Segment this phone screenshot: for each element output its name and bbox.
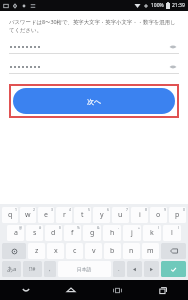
button[interactable]: o xyxy=(150,207,167,223)
staticText: b xyxy=(110,246,115,256)
button[interactable]: Home xyxy=(52,280,90,300)
button[interactable]: k xyxy=(143,225,161,241)
staticText: c xyxy=(73,246,77,256)
button[interactable]: i xyxy=(131,207,148,223)
staticText: e xyxy=(44,210,48,220)
staticText: i xyxy=(139,210,141,220)
staticText: t xyxy=(81,210,84,220)
staticText: w xyxy=(25,210,31,220)
staticText: ) xyxy=(178,225,180,230)
button[interactable]: Symbols xyxy=(23,261,42,277)
staticText: m xyxy=(147,246,154,256)
button[interactable]: Cursor left xyxy=(127,261,142,277)
staticText: 9 xyxy=(164,207,166,212)
staticText: r xyxy=(63,210,66,220)
button[interactable]: t xyxy=(74,207,91,223)
staticText: f xyxy=(71,228,74,238)
staticText: d xyxy=(51,228,56,238)
staticText: . xyxy=(118,265,120,273)
button[interactable]: Cursor right xyxy=(144,261,159,277)
staticText: 6 xyxy=(107,207,109,212)
staticText: l xyxy=(171,228,173,238)
button[interactable]: s xyxy=(26,225,43,241)
button[interactable]: n xyxy=(123,243,140,259)
staticText: ( xyxy=(158,225,160,230)
button[interactable]: h xyxy=(103,225,121,241)
staticText: k xyxy=(150,228,154,238)
button[interactable]: l xyxy=(163,225,181,241)
button[interactable]: c xyxy=(66,243,83,259)
button[interactable]: Backspace xyxy=(161,243,186,259)
staticText: 日本語 xyxy=(77,266,92,272)
button[interactable]: r xyxy=(56,207,72,223)
staticText: p xyxy=(175,210,180,220)
button[interactable]: w xyxy=(20,207,36,223)
staticText: , xyxy=(49,265,51,273)
staticText: # xyxy=(39,225,42,230)
staticText: 100% xyxy=(151,2,164,9)
button[interactable]: m xyxy=(142,243,159,259)
button[interactable]: f xyxy=(64,225,81,241)
button[interactable]: 日本語 xyxy=(58,261,111,277)
button[interactable]: 次へ xyxy=(13,88,175,114)
staticText: !?# xyxy=(29,266,36,273)
staticText: @ xyxy=(19,225,23,230)
staticText: $ xyxy=(59,225,61,230)
staticText: a xyxy=(14,228,18,238)
button[interactable]: j xyxy=(123,225,141,241)
staticText: 4 xyxy=(69,207,71,212)
button[interactable]: x xyxy=(47,243,64,259)
staticText: 3 xyxy=(51,207,53,212)
staticText: v xyxy=(92,246,96,256)
staticText: 8 xyxy=(145,207,147,212)
button[interactable]: Language xyxy=(2,261,21,277)
staticText: n xyxy=(129,246,134,256)
staticText: h xyxy=(110,228,115,238)
staticText: - xyxy=(118,225,120,230)
staticText: 2 xyxy=(33,207,35,212)
button[interactable]: u xyxy=(112,207,129,223)
staticText: 0 xyxy=(183,207,185,212)
button[interactable]: Back xyxy=(98,280,136,300)
button[interactable]: q xyxy=(2,207,18,223)
button[interactable]: a xyxy=(7,225,24,241)
button[interactable]: Comma xyxy=(44,261,56,277)
staticText: y xyxy=(100,210,104,220)
staticText: パスワードは8〜30桁で、英字大文字・英字小文字・・数字を混用してください。 xyxy=(9,18,179,34)
button[interactable]: Show password xyxy=(167,41,179,53)
staticText: j xyxy=(131,228,133,238)
staticText: q xyxy=(8,210,13,220)
button[interactable]: Enter xyxy=(161,261,186,277)
staticText: あa xyxy=(7,265,17,273)
staticText: o xyxy=(156,210,161,220)
button[interactable]: Show password xyxy=(167,61,179,73)
staticText: 7 xyxy=(126,207,128,212)
button[interactable]: g xyxy=(83,225,101,241)
staticText: s xyxy=(33,228,37,238)
button[interactable]: Hide keyboard xyxy=(7,280,45,300)
button[interactable]: v xyxy=(85,243,102,259)
button[interactable]: b xyxy=(104,243,121,259)
staticText: u xyxy=(118,210,123,220)
staticText: 次へ xyxy=(87,97,102,106)
button[interactable]: Recents xyxy=(143,280,181,300)
staticText: x xyxy=(54,246,58,256)
staticText: 21:39 xyxy=(172,2,185,9)
button[interactable]: Period xyxy=(113,261,125,277)
button[interactable]: Shift xyxy=(2,243,26,259)
button[interactable]: y xyxy=(93,207,110,223)
staticText: + xyxy=(138,225,140,230)
staticText: z xyxy=(35,246,39,256)
staticText: g xyxy=(90,228,95,238)
staticText: & xyxy=(97,225,100,230)
staticText: 1 xyxy=(15,207,17,212)
button[interactable]: e xyxy=(38,207,54,223)
button[interactable]: p xyxy=(169,207,186,223)
staticText: 5 xyxy=(88,207,90,212)
staticText: % xyxy=(77,225,80,230)
button[interactable]: z xyxy=(28,243,45,259)
button[interactable]: d xyxy=(45,225,62,241)
